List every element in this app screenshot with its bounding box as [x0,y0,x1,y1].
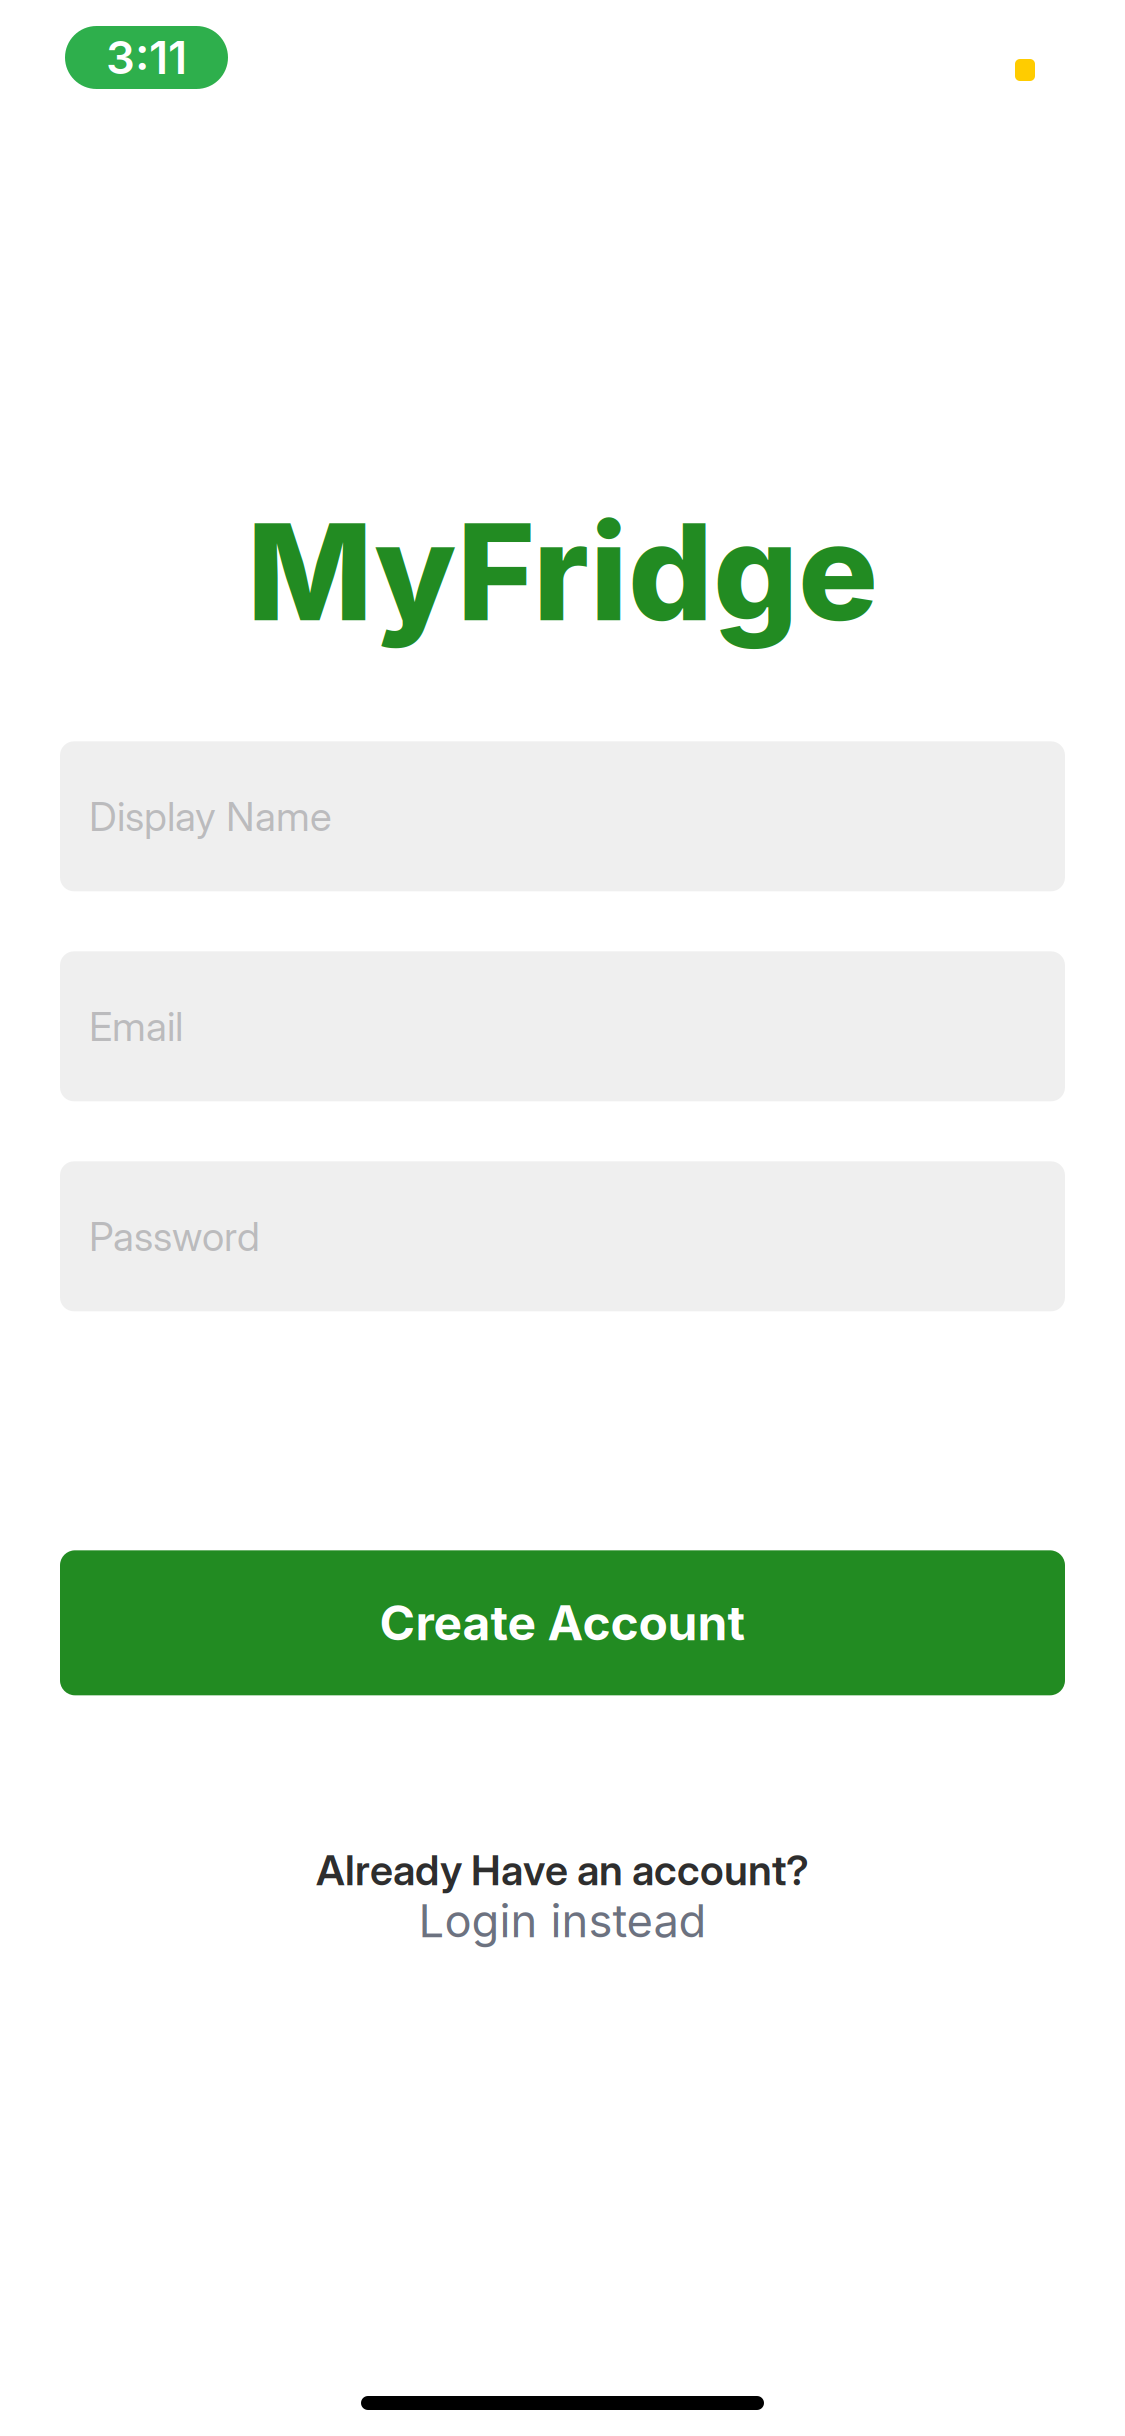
staticText: Login instead [418,1893,706,1948]
button[interactable]: Email [60,951,1065,1101]
staticText: MyFridge [247,491,878,652]
staticText: Create Account [379,1594,745,1652]
button[interactable]: Login instead [418,1893,706,1948]
staticText: Already Have an account? [316,1845,809,1895]
staticText: 3:11 [106,30,187,85]
staticText: Display Name [89,792,332,840]
button[interactable]: Display Name [60,741,1065,891]
staticText: Password [89,1212,260,1260]
staticText: Email [89,1002,183,1050]
button[interactable]: Password [60,1161,1065,1311]
button[interactable]: Create Account [60,1550,1065,1695]
